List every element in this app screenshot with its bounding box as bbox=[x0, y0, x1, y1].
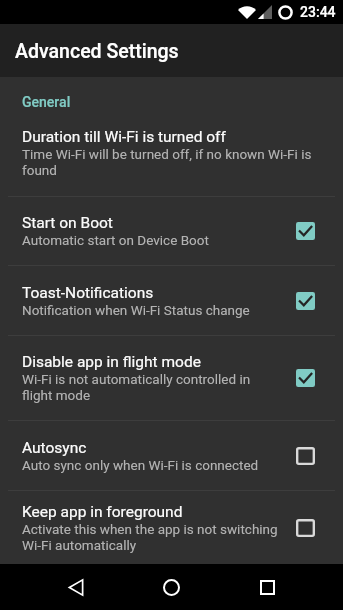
staticText: General bbox=[22, 94, 71, 110]
staticText: Advanced Settings bbox=[15, 40, 179, 63]
staticText: Automatic start on Device Boot bbox=[22, 232, 209, 248]
staticText: Auto sync only when Wi-Fi is connected bbox=[22, 457, 259, 473]
button[interactable]: Toast-Notifications bbox=[296, 266, 343, 335]
staticText: Toast-Notifications bbox=[22, 284, 154, 302]
staticText: Disable app in flight mode bbox=[22, 353, 201, 371]
staticText: Start on Boot bbox=[22, 214, 113, 232]
staticText: Duration till Wi-Fi is turned off bbox=[22, 128, 226, 146]
button[interactable]: Duration till Wi-Fi is turned off bbox=[0, 110, 343, 196]
button[interactable]: Back bbox=[52, 564, 100, 610]
button[interactable]: Recents bbox=[243, 564, 291, 610]
button[interactable]: Start on Boot bbox=[296, 197, 343, 265]
staticText: Notification when Wi-Fi Status change bbox=[22, 302, 250, 318]
staticText: 23:44 bbox=[300, 4, 336, 20]
button[interactable]: Toast-Notifications bbox=[0, 266, 343, 335]
button[interactable]: Autosync bbox=[296, 421, 343, 490]
staticText: Keep app in foreground bbox=[22, 503, 183, 521]
staticText: Activate this when the app is not switch… bbox=[22, 521, 278, 553]
button[interactable]: Disable app in flight mode bbox=[296, 336, 343, 420]
button[interactable]: Keep app in foreground bbox=[296, 491, 343, 564]
button[interactable]: Disable app in flight mode bbox=[0, 336, 343, 420]
button[interactable]: Autosync bbox=[0, 421, 343, 490]
button[interactable]: Advanced Settings bbox=[0, 24, 343, 77]
button[interactable]: Keep app in foreground bbox=[0, 491, 343, 564]
button[interactable]: Home bbox=[147, 564, 195, 610]
staticText: Time Wi-Fi will be turned off, if no kno… bbox=[22, 146, 321, 178]
staticText: Wi-Fi is not automatically controlled in… bbox=[22, 371, 278, 403]
staticText: Autosync bbox=[22, 439, 87, 457]
button[interactable]: Start on Boot bbox=[0, 197, 343, 265]
